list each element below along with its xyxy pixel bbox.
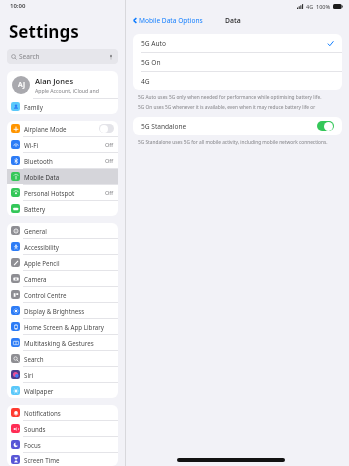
staticText: 5G Standalone uses 5G for all mobile act… <box>138 139 337 146</box>
staticText: Mobile Data <box>24 173 60 181</box>
staticText: 5G Standalone <box>141 122 187 131</box>
staticText: Alan Jones <box>35 76 74 86</box>
staticText: Airplane Mode <box>24 125 67 133</box>
staticText: Search <box>24 355 44 363</box>
staticText: Wi-Fi <box>24 141 39 149</box>
staticText: Mobile Data Options <box>139 16 203 25</box>
staticText: 5G Auto uses 5G only when needed for per… <box>138 94 337 101</box>
button[interactable]: Personal Hotspot <box>7 185 118 200</box>
button[interactable]: Search <box>7 351 118 366</box>
staticText: AJ <box>18 80 25 90</box>
button[interactable]: Bluetooth <box>7 153 118 168</box>
button[interactable]: 4G <box>133 72 342 90</box>
staticText: 5G On uses 5G whenever it is available, … <box>138 104 337 111</box>
button[interactable]: Search <box>7 49 118 64</box>
button[interactable]: 5G On <box>133 53 342 71</box>
staticText: Family <box>24 103 43 111</box>
button[interactable]: Display & Brightness <box>7 303 118 318</box>
button[interactable]: 5G Standalone <box>133 117 342 135</box>
staticText: Display & Brightness <box>24 307 85 315</box>
staticText: Apple Account, iCloud and more <box>35 87 113 94</box>
button[interactable]: Wallpaper <box>7 383 118 398</box>
button[interactable]: Home Screen & App Library <box>7 319 118 334</box>
staticText: Battery <box>24 205 46 213</box>
staticText: Apple Pencil <box>24 259 60 267</box>
staticText: Off <box>105 189 114 197</box>
staticText: Accessibility <box>24 243 59 251</box>
staticText: 5G Auto <box>141 39 166 48</box>
button[interactable]: Battery <box>7 201 118 216</box>
staticText: Off <box>105 141 114 149</box>
staticText: 10:00 <box>10 2 26 10</box>
staticText: Notifications <box>24 409 61 417</box>
button[interactable]: Siri <box>7 367 118 382</box>
staticText: Sounds <box>24 425 46 433</box>
button[interactable] <box>99 124 114 133</box>
button[interactable]: Control Centre <box>7 287 118 302</box>
staticText: Screen Time <box>24 456 60 464</box>
button[interactable]: Sounds <box>7 421 118 436</box>
other: Selected <box>327 40 334 47</box>
button[interactable]: Screen Time <box>7 453 118 466</box>
button[interactable]: Focus <box>7 437 118 452</box>
button[interactable]: Camera <box>7 271 118 286</box>
button[interactable]: 5G Auto <box>133 34 342 52</box>
button[interactable]: Notifications <box>7 405 118 420</box>
staticText: Control Centre <box>24 291 67 299</box>
button[interactable]: General <box>7 223 118 238</box>
staticText: General <box>24 227 47 235</box>
staticText: Home Screen & App Library <box>24 323 104 331</box>
staticText: Personal Hotspot <box>24 189 75 197</box>
staticText: Off <box>105 157 114 165</box>
staticText: Siri <box>24 371 34 379</box>
button[interactable]: Apple Pencil <box>7 255 118 270</box>
staticText: Bluetooth <box>24 157 53 165</box>
staticText: Wallpaper <box>24 387 54 395</box>
staticText: 5G On <box>141 58 161 67</box>
button[interactable]: Mobile Data Options <box>131 14 205 27</box>
staticText: Camera <box>24 275 47 283</box>
button[interactable] <box>317 121 334 131</box>
button[interactable]: Mobile Data <box>7 169 118 184</box>
button[interactable]: Wi-Fi <box>7 137 118 152</box>
button[interactable]: Family <box>7 99 118 114</box>
staticText: 100% <box>316 3 331 10</box>
button[interactable]: Accessibility <box>7 239 118 254</box>
staticText: Data <box>225 16 241 25</box>
button[interactable]: AJ <box>7 71 118 98</box>
button[interactable]: Airplane Mode <box>7 121 118 136</box>
staticText: 4G <box>306 3 314 10</box>
staticText: Focus <box>24 441 41 449</box>
staticText: Search <box>19 52 40 61</box>
staticText: Multitasking & Gestures <box>24 339 94 347</box>
staticText: Settings <box>9 20 79 43</box>
staticText: 4G <box>141 77 150 86</box>
button[interactable]: Multitasking & Gestures <box>7 335 118 350</box>
